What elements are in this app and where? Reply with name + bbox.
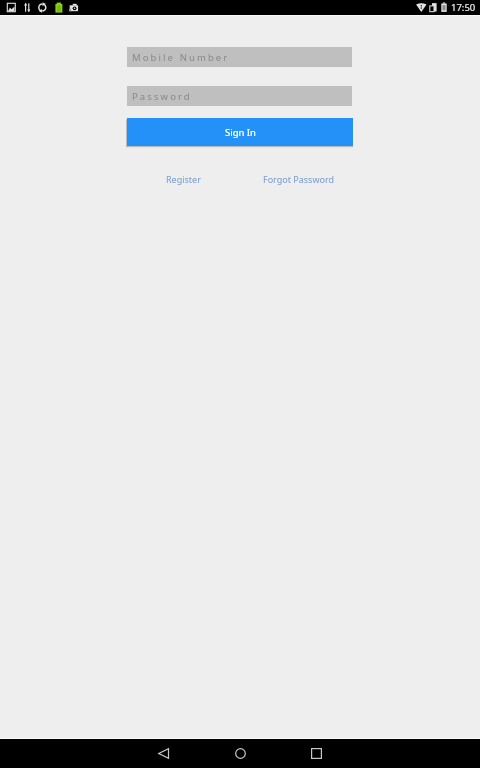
staticText: 17:50: [451, 1, 476, 14]
button[interactable]: Register: [125, 172, 241, 186]
staticText: Sign In: [225, 126, 256, 139]
staticText: Password: [132, 90, 192, 103]
button[interactable]: Home: [216, 739, 264, 768]
staticText: Register: [166, 173, 201, 185]
button[interactable]: Back: [139, 739, 187, 768]
button[interactable]: Forgot Password: [241, 172, 357, 186]
staticText: Forgot Password: [263, 173, 335, 185]
button[interactable]: Mobile Number: [127, 47, 352, 67]
button[interactable]: Password: [127, 86, 352, 106]
button[interactable]: Recent apps: [292, 739, 340, 768]
staticText: Mobile Number: [132, 51, 230, 64]
button[interactable]: Sign In: [127, 118, 353, 146]
